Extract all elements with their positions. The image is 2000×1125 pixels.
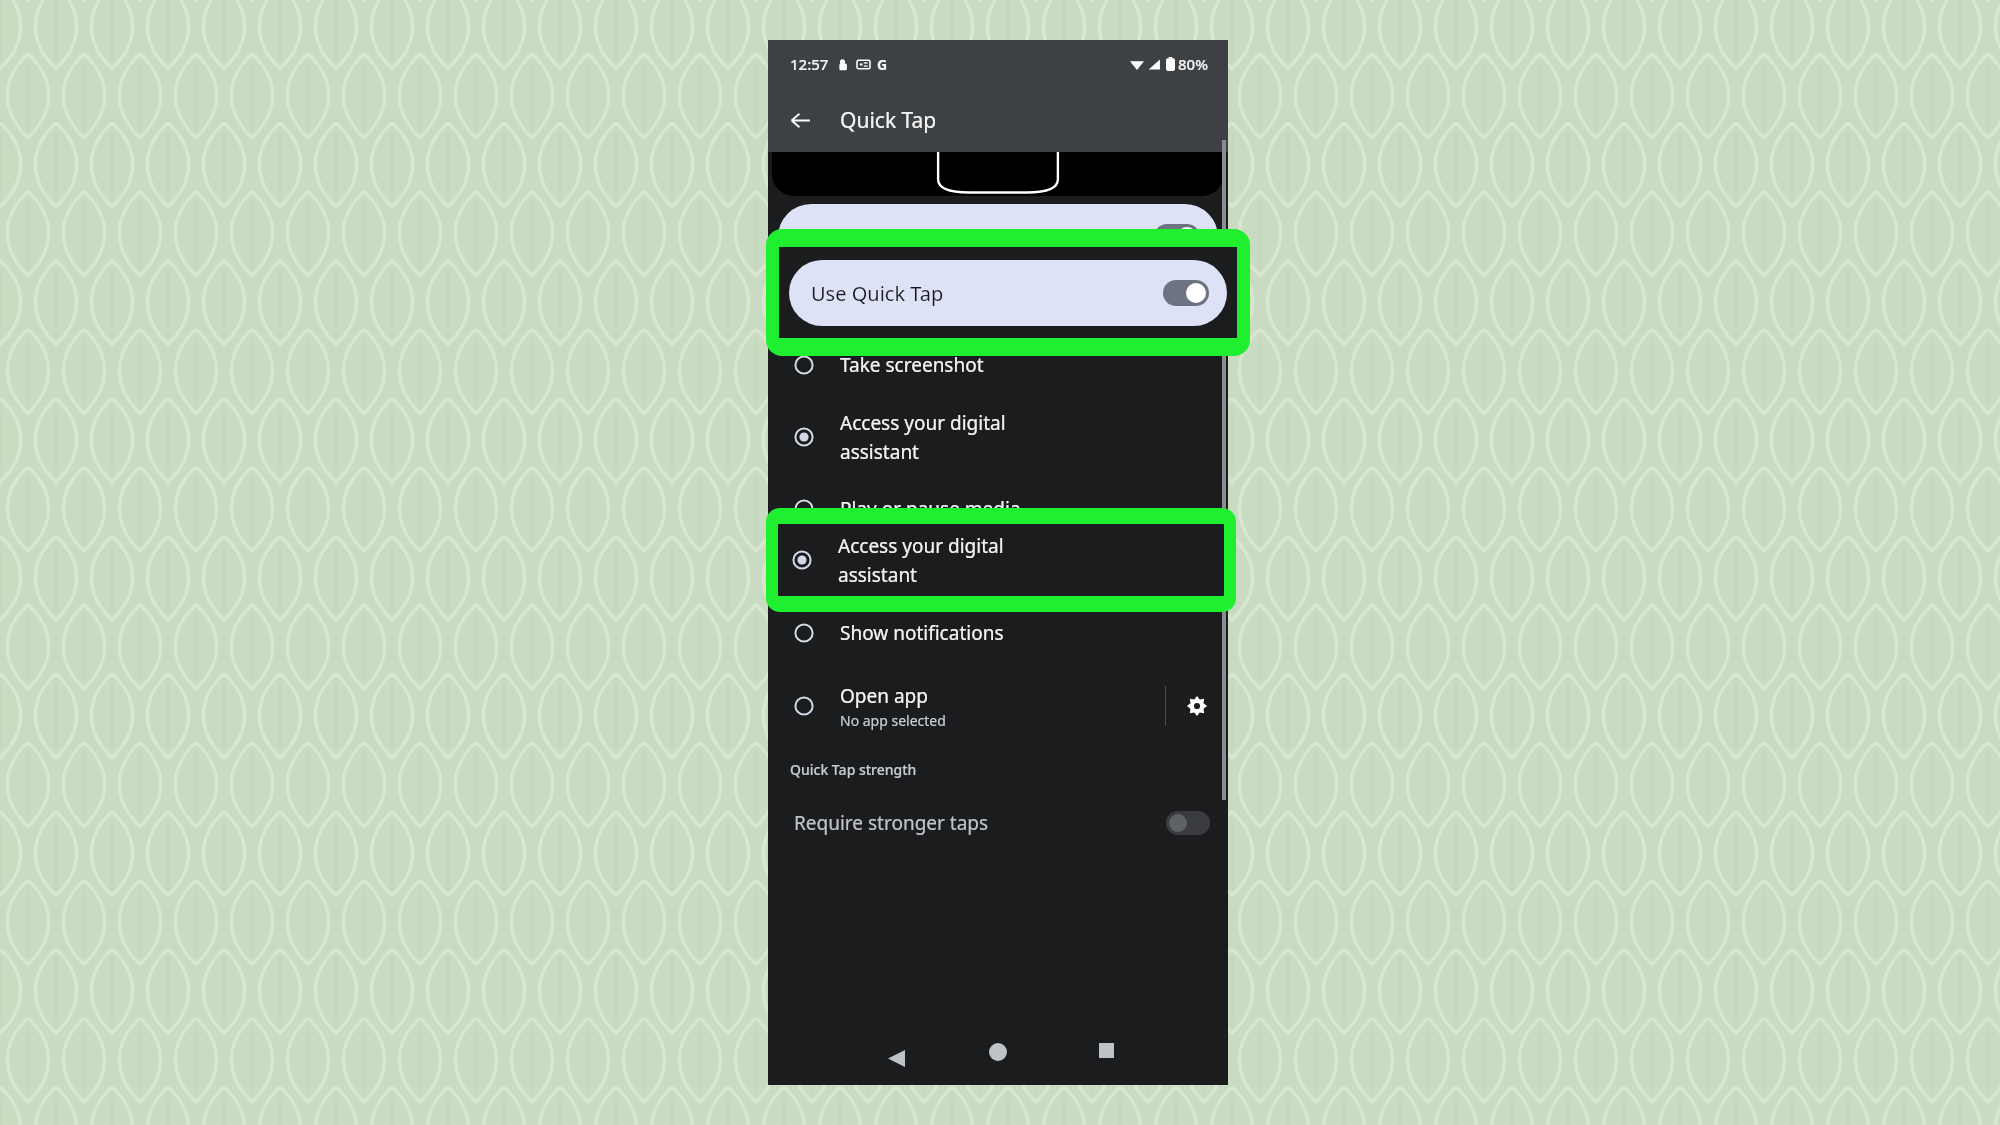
button[interactable]: Recent apps xyxy=(1086,1030,1126,1070)
staticText: Open app xyxy=(840,683,928,709)
staticText: Tap back of phone twice to xyxy=(790,304,969,323)
staticText: Require stronger taps xyxy=(794,810,1166,836)
button[interactable]: Play or pause media xyxy=(768,478,1228,540)
staticText: assistant xyxy=(838,562,917,588)
staticText: assistant xyxy=(840,439,919,465)
staticText: Quick Tap xyxy=(840,106,937,135)
staticText: See recent apps xyxy=(840,558,982,584)
staticText: Play or pause media xyxy=(840,496,1021,522)
button[interactable]: App settings xyxy=(1166,664,1228,748)
button[interactable]: Take screenshot xyxy=(768,334,1228,396)
staticText: Access your digital xyxy=(840,410,1006,436)
button[interactable]: Use Quick Tap xyxy=(789,260,1227,326)
button[interactable]: Access your digital xyxy=(778,524,1224,596)
button[interactable]: Access your digital xyxy=(768,396,1228,478)
button[interactable]: Show notifications xyxy=(768,602,1228,664)
button[interactable]: Back xyxy=(876,1038,916,1078)
button[interactable]: See recent apps xyxy=(768,540,1228,602)
button[interactable]: Home xyxy=(978,1032,1018,1072)
staticText: Show notifications xyxy=(840,620,1004,646)
button[interactable]: Require stronger taps xyxy=(768,790,1228,856)
staticText: Quick Tap strength xyxy=(790,760,917,779)
button[interactable]: Use Quick Tap xyxy=(778,204,1218,270)
button[interactable]: Back xyxy=(778,98,822,142)
staticText: Access your digital xyxy=(838,533,1004,559)
staticText: Use Quick Tap xyxy=(800,224,1154,251)
staticText: G xyxy=(877,55,888,74)
staticText: 80% xyxy=(1178,54,1208,74)
staticText: 12:57 xyxy=(790,54,829,74)
staticText: Use Quick Tap xyxy=(811,280,1163,307)
button[interactable]: Open app xyxy=(768,664,1165,748)
staticText: Take screenshot xyxy=(840,352,984,378)
staticText: No app selected xyxy=(840,711,946,730)
